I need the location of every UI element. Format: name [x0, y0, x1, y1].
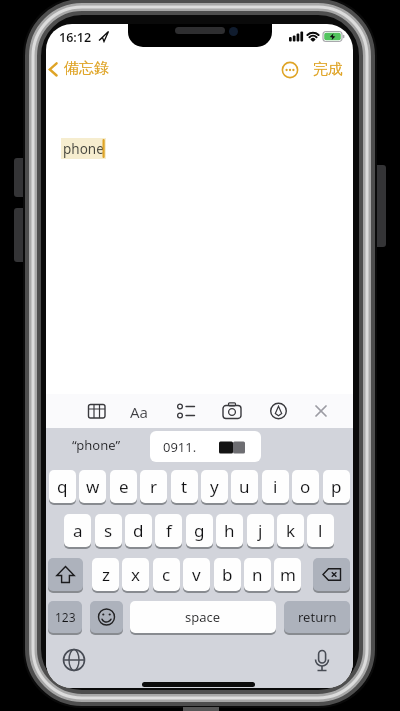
button[interactable]: q: [49, 470, 76, 503]
button[interactable]: s: [95, 514, 122, 547]
button[interactable]: p: [323, 470, 350, 503]
staticText: n: [252, 563, 263, 586]
button[interactable]: [313, 558, 350, 591]
staticText: phone: [63, 140, 104, 158]
button[interactable]: e: [110, 470, 137, 503]
button[interactable]: y: [201, 470, 228, 503]
staticText: g: [194, 519, 205, 542]
staticText: b: [222, 563, 233, 586]
staticText: e: [119, 475, 129, 498]
staticText: v: [192, 563, 201, 586]
staticText: o: [300, 475, 311, 498]
button[interactable]: [281, 61, 299, 79]
button[interactable]: [59, 645, 89, 675]
button[interactable]: c: [153, 558, 180, 591]
button[interactable]: f: [155, 514, 182, 547]
staticText: u: [239, 475, 250, 498]
staticText: y: [210, 475, 219, 498]
button[interactable]: h: [216, 514, 243, 547]
staticText: x: [131, 563, 140, 586]
button[interactable]: [150, 431, 261, 462]
staticText: q: [57, 475, 68, 498]
button[interactable]: u: [231, 470, 258, 503]
button[interactable]: t: [171, 470, 198, 503]
button[interactable]: n: [244, 558, 271, 591]
button[interactable]: [90, 601, 123, 633]
button[interactable]: “phone”: [72, 436, 121, 454]
staticText: r: [150, 475, 158, 498]
staticText: 123: [55, 609, 76, 625]
button[interactable]: [46, 394, 353, 428]
button[interactable]: 備忘錄: [64, 59, 109, 78]
button[interactable]: 完成: [313, 60, 343, 79]
staticText: f: [166, 519, 172, 542]
staticText: 16:12: [59, 29, 92, 46]
button[interactable]: b: [214, 558, 241, 591]
staticText: return: [298, 608, 337, 626]
staticText: space: [185, 608, 221, 626]
staticText: c: [162, 563, 171, 586]
button[interactable]: o: [292, 470, 319, 503]
button[interactable]: 123: [48, 601, 82, 633]
staticText: h: [224, 519, 235, 542]
button[interactable]: i: [262, 470, 289, 503]
button[interactable]: return: [284, 601, 350, 633]
button[interactable]: d: [125, 514, 152, 547]
button[interactable]: [307, 645, 337, 675]
staticText: 0911.: [163, 438, 197, 456]
button[interactable]: w: [79, 470, 106, 503]
button[interactable]: Aa: [130, 402, 149, 422]
staticText: k: [286, 519, 296, 542]
button[interactable]: g: [186, 514, 213, 547]
staticText: m: [280, 563, 296, 586]
staticText: l: [318, 519, 323, 542]
button[interactable]: x: [122, 558, 149, 591]
button[interactable]: space: [130, 601, 276, 633]
staticText: s: [104, 519, 113, 542]
button[interactable]: m: [274, 558, 301, 591]
staticText: w: [86, 475, 100, 498]
button[interactable]: a: [64, 514, 91, 547]
staticText: i: [273, 475, 278, 498]
button[interactable]: k: [277, 514, 304, 547]
button[interactable]: v: [183, 558, 210, 591]
staticText: t: [181, 475, 188, 498]
button[interactable]: [48, 558, 83, 591]
button[interactable]: z: [92, 558, 119, 591]
staticText: a: [73, 519, 83, 542]
button[interactable]: l: [307, 514, 334, 547]
button[interactable]: r: [140, 470, 167, 503]
staticText: p: [331, 475, 342, 498]
staticText: z: [102, 563, 110, 586]
button[interactable]: j: [247, 514, 274, 547]
staticText: j: [258, 519, 263, 542]
staticText: d: [133, 519, 144, 542]
